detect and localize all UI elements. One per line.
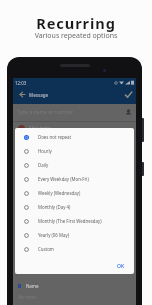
staticText: OK xyxy=(117,263,125,270)
button[interactable]: Weekly (Wednesday) xyxy=(15,186,134,200)
button[interactable]: Yearly (06 May) xyxy=(15,228,134,242)
button[interactable]: Name xyxy=(18,281,136,291)
staticText: Custom xyxy=(38,246,54,252)
staticText: Weekly (Wednesday) xyxy=(38,190,81,196)
staticText: Hourly xyxy=(38,148,52,154)
button[interactable]: Monthly (Day 4) xyxy=(15,200,134,214)
staticText: Does not repeat xyxy=(38,134,72,140)
button[interactable]: Every Weekday (Mon-Fri) xyxy=(15,172,134,186)
button[interactable]: Does not repeat xyxy=(15,130,134,144)
button[interactable]: OK xyxy=(114,262,128,271)
staticText: 12:03 xyxy=(15,80,27,86)
staticText: Alice Jones xyxy=(29,125,51,131)
button[interactable]: Send xyxy=(123,89,134,100)
staticText: No notes xyxy=(18,294,37,300)
staticText: Every Weekday (Mon-Fri) xyxy=(38,176,89,182)
button[interactable]: Custom xyxy=(15,242,134,256)
staticText: Name xyxy=(26,283,39,289)
button[interactable]: Daily xyxy=(15,158,134,172)
staticText: Type a name or number xyxy=(17,109,74,116)
staticText: Yearly (06 May) xyxy=(38,232,70,238)
button[interactable]: Contacts xyxy=(124,108,133,117)
staticText: Monthly (Day 4) xyxy=(38,204,71,210)
staticText: Recurring xyxy=(0,13,152,33)
button[interactable]: Hourly xyxy=(15,144,134,158)
staticText: Daily xyxy=(38,162,49,168)
button[interactable]: Alice Jones xyxy=(18,122,136,134)
staticText: Monthly (The First Wednesday) xyxy=(38,218,102,224)
staticText: Message xyxy=(29,92,49,98)
staticText: Various repeated options xyxy=(0,31,152,41)
button[interactable]: Monthly (The First Wednesday) xyxy=(15,214,134,228)
button[interactable]: Back xyxy=(18,90,27,99)
